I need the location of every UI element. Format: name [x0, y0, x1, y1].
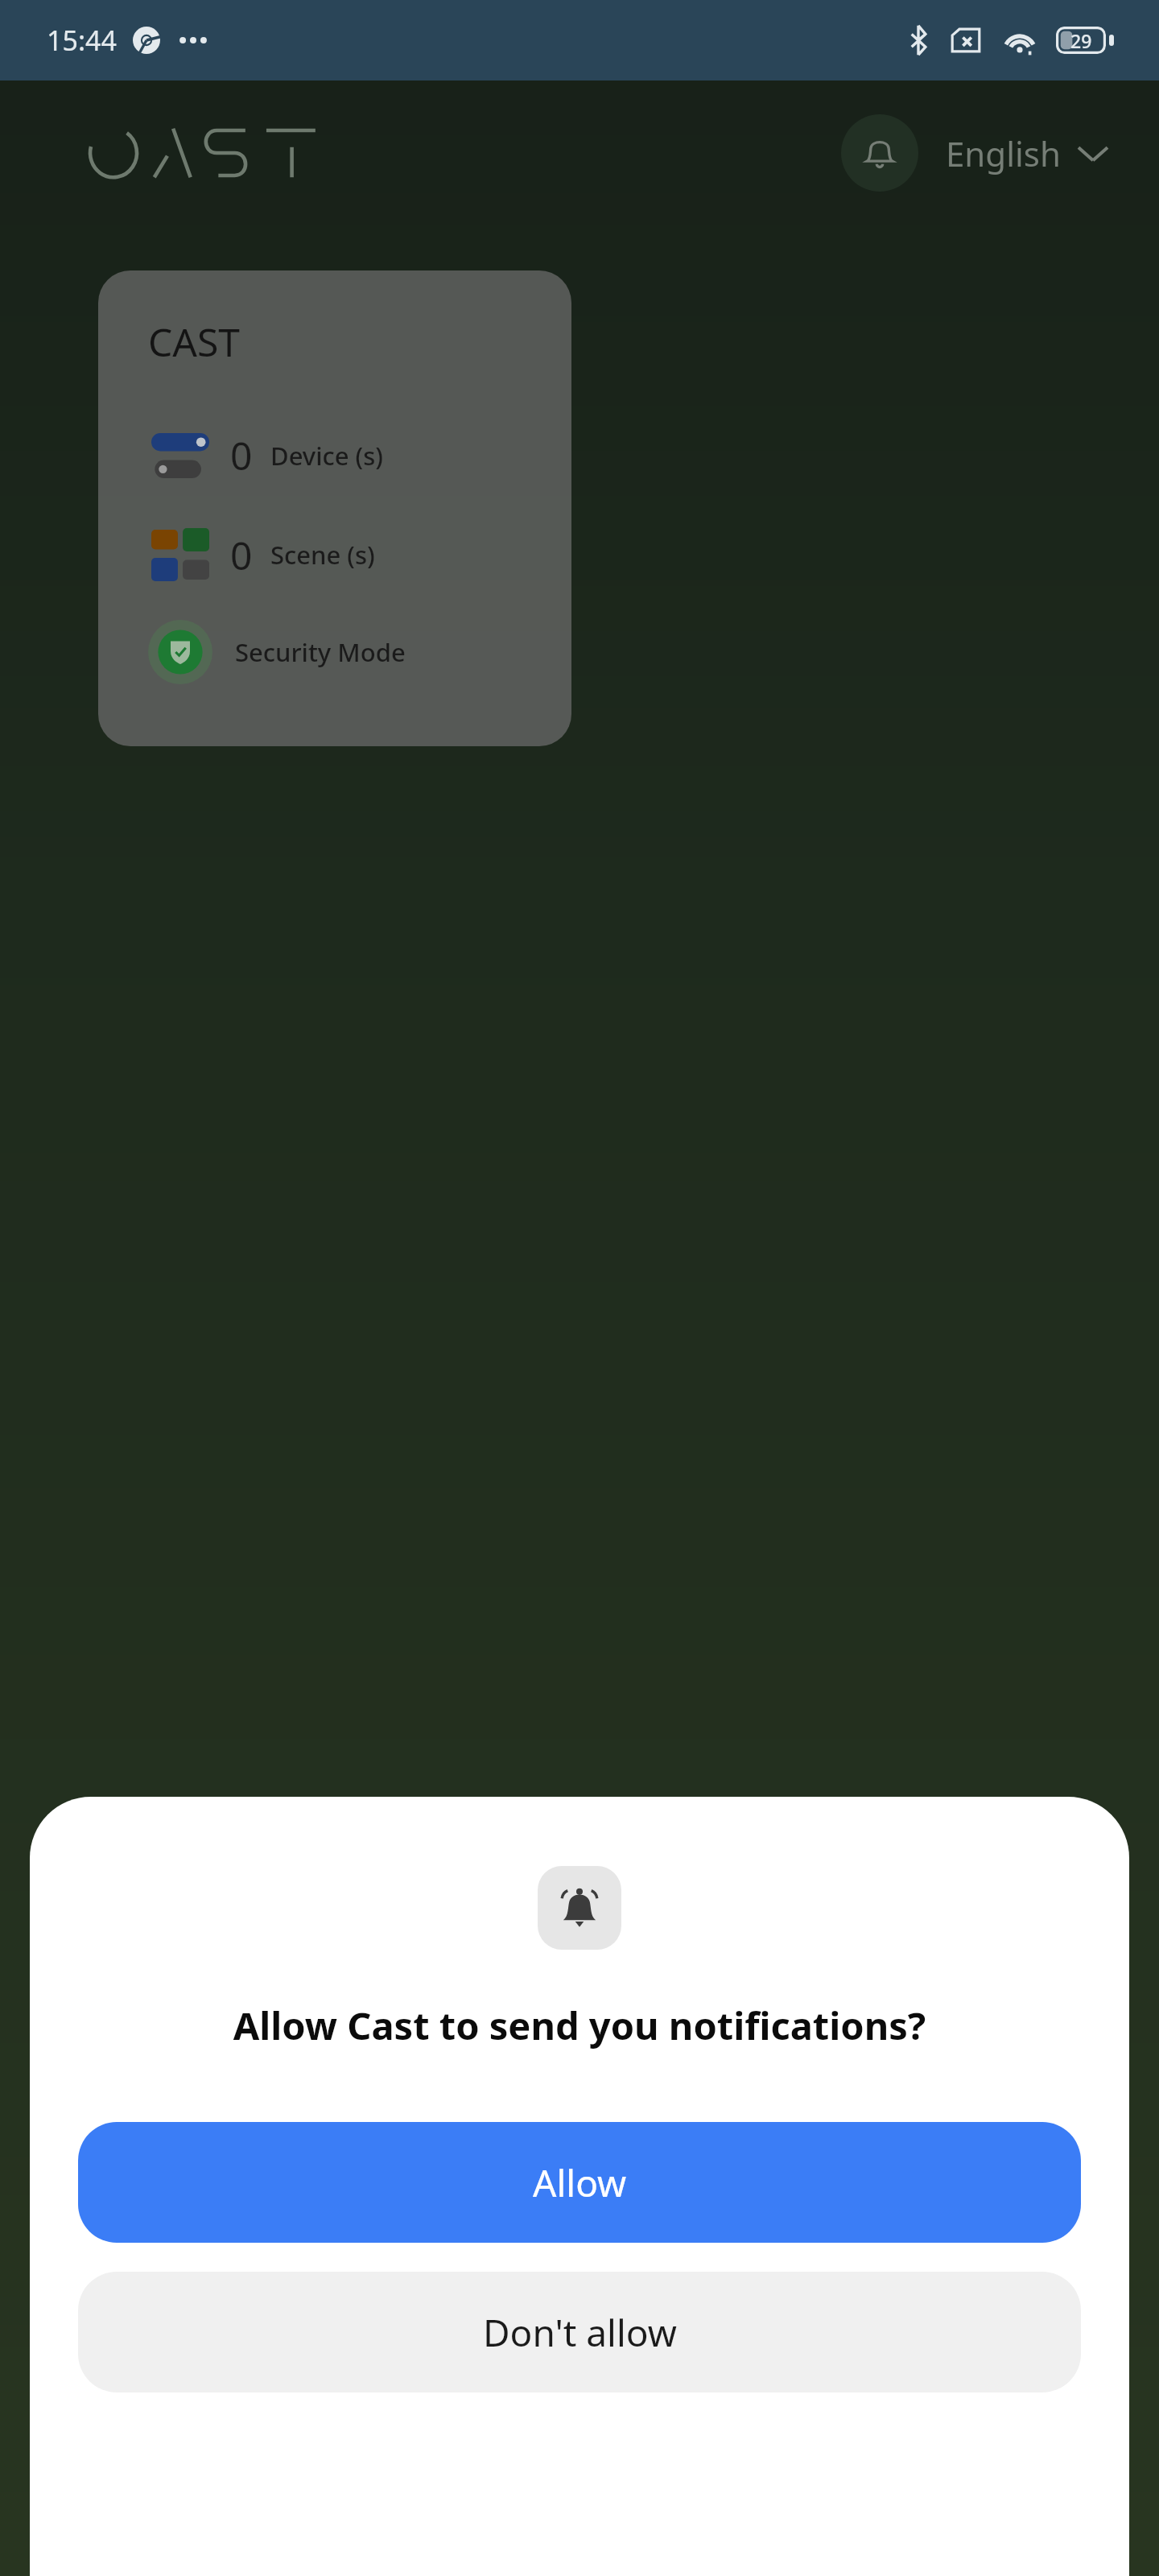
button[interactable]: English [939, 122, 1114, 184]
staticText: Allow Cast to send you notifications? [54, 2000, 1105, 2051]
button[interactable]: CAST [98, 270, 571, 746]
staticText: Security Mode [235, 635, 406, 669]
staticText: English [946, 130, 1061, 176]
staticText: Scene (s) [270, 538, 375, 572]
staticText: 0 [230, 429, 253, 481]
staticText: 15:44 [47, 22, 117, 59]
staticText: Device (s) [270, 439, 384, 473]
staticText: 0 [230, 529, 253, 581]
button[interactable]: Notifications [841, 114, 918, 192]
staticText: 29 [1070, 28, 1092, 53]
staticText: CAST [148, 316, 241, 368]
button[interactable]: Allow [78, 2122, 1081, 2243]
staticText: Don't allow [483, 2307, 677, 2358]
button[interactable]: Don't allow [78, 2272, 1081, 2392]
staticText: Allow [533, 2157, 627, 2208]
